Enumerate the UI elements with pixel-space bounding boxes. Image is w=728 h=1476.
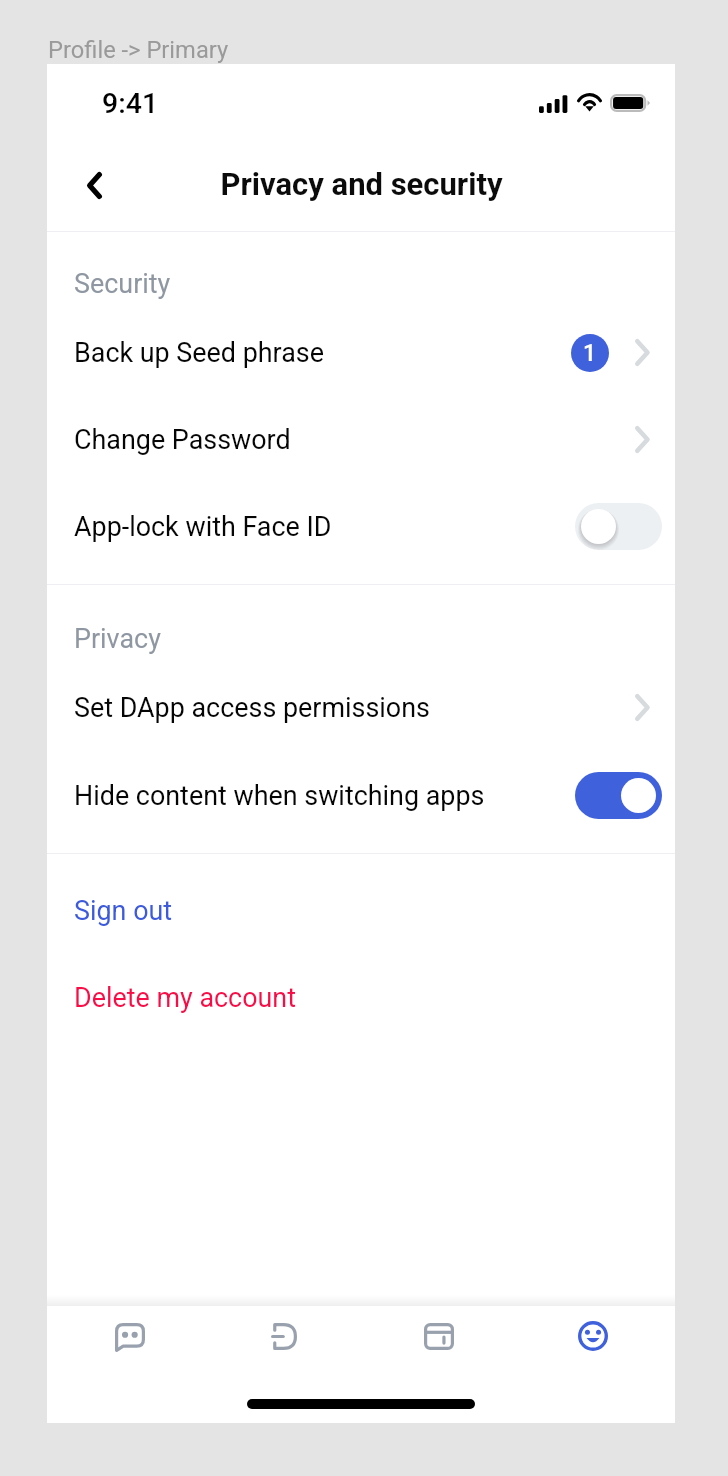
button[interactable]: Chats xyxy=(91,1298,169,1376)
staticText: App-lock with Face ID xyxy=(74,511,332,543)
button[interactable]: Delete my account xyxy=(47,954,675,1041)
button[interactable]: Connect xyxy=(245,1297,323,1375)
staticText: Hide content when switching apps xyxy=(74,780,485,812)
staticText: Back up Seed phrase xyxy=(74,337,324,369)
button[interactable]: App-lock with Face ID xyxy=(47,483,675,570)
staticText: 9:41 xyxy=(102,87,159,120)
button[interactable]: Switch on xyxy=(575,772,662,819)
button[interactable]: Wallet xyxy=(400,1297,478,1375)
button[interactable]: Back up Seed phrase xyxy=(47,309,675,396)
staticText: Change Password xyxy=(74,424,291,456)
button[interactable]: Back xyxy=(66,157,122,213)
button[interactable]: Hide content when switching apps xyxy=(47,752,675,839)
button[interactable]: Switch off xyxy=(575,503,662,550)
staticText: Privacy xyxy=(74,623,161,655)
staticText: Profile -> Primary xyxy=(48,36,229,64)
staticText: Delete my account xyxy=(74,982,296,1014)
staticText: Set DApp access permissions xyxy=(74,692,430,724)
staticText: 1 xyxy=(583,340,597,367)
button[interactable]: Set DApp access permissions xyxy=(47,664,675,751)
staticText: Sign out xyxy=(74,895,173,927)
staticText: Security xyxy=(74,268,171,300)
button[interactable]: Profile xyxy=(554,1297,632,1375)
button[interactable]: Sign out xyxy=(47,867,675,954)
button[interactable]: Change Password xyxy=(47,396,675,483)
staticText: Privacy and security xyxy=(220,166,503,202)
